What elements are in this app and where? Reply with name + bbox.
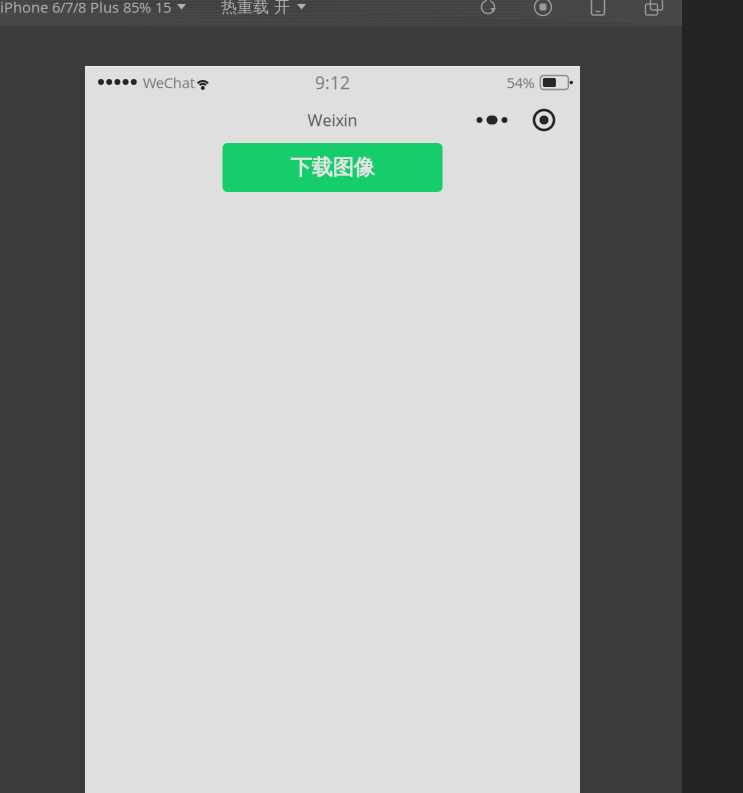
button[interactable]: Reload	[479, 0, 497, 16]
staticText: Weixin	[307, 109, 357, 131]
staticText: 热重载 开	[221, 0, 290, 17]
button[interactable]: 下载图像	[222, 143, 442, 192]
staticText: 下载图像	[290, 154, 374, 181]
staticText: 54%	[506, 73, 534, 92]
staticText: 9:12	[315, 71, 350, 94]
button[interactable]: Device	[589, 0, 607, 16]
staticText: iPhone 6/7/8 Plus 85% 15	[0, 0, 171, 17]
button[interactable]: More	[473, 106, 511, 133]
button[interactable]: 热重载 开	[221, 0, 310, 17]
button[interactable]: Close	[530, 106, 558, 134]
button[interactable]: Windows	[644, 0, 664, 16]
button[interactable]: Record	[534, 0, 552, 16]
staticText: WeChat	[143, 73, 195, 92]
button[interactable]: iPhone 6/7/8 Plus 85% 15	[0, 0, 192, 17]
